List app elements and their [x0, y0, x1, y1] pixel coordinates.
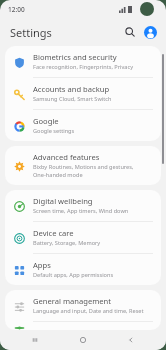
staticText: Advanced features: [33, 152, 100, 162]
staticText: Biometrics and security: [33, 52, 117, 62]
staticText: General management: [33, 296, 112, 306]
staticText: Digital wellbeing: [33, 196, 93, 206]
staticText: Device care: [33, 228, 74, 238]
button[interactable]: Biometrics and security: [5, 46, 161, 77]
button[interactable]: Advanced features: [5, 146, 161, 185]
staticText: Apps: [33, 260, 51, 270]
staticText: 12:00: [8, 5, 25, 14]
staticText: Battery, Storage, Memory: [33, 239, 101, 247]
staticText: Settings: [10, 25, 52, 40]
button[interactable]: Accessibility: [5, 322, 161, 330]
button[interactable]: General management: [5, 290, 161, 321]
staticText: Face recognition, Fingerprints, Privacy: [33, 63, 134, 71]
button[interactable]: Digital wellbeing: [5, 190, 161, 221]
button[interactable]: Recents: [22, 330, 48, 350]
staticText: Bixby Routines, Motions and gestures,: [33, 163, 134, 171]
staticText: Default apps, App permissions: [33, 271, 114, 279]
button[interactable]: Device care: [5, 222, 161, 253]
staticText: Screen time, App timers, Wind down: [33, 207, 129, 215]
staticText: One-handed mode: [33, 171, 83, 179]
button[interactable]: Accounts and backup: [5, 78, 161, 109]
button[interactable]: Search: [122, 24, 138, 40]
button[interactable]: Home: [70, 330, 96, 350]
button[interactable]: Back: [118, 330, 144, 350]
button[interactable]: Apps: [5, 254, 161, 285]
staticText: Samsung Cloud, Smart Switch: [33, 95, 112, 103]
staticText: Google settings: [33, 127, 75, 135]
staticText: Language and input, Date and time, Reset: [33, 307, 144, 315]
button[interactable]: Google: [5, 110, 161, 141]
staticText: Accounts and backup: [33, 84, 110, 94]
staticText: Google: [33, 116, 59, 126]
button[interactable]: Account: [142, 24, 158, 40]
